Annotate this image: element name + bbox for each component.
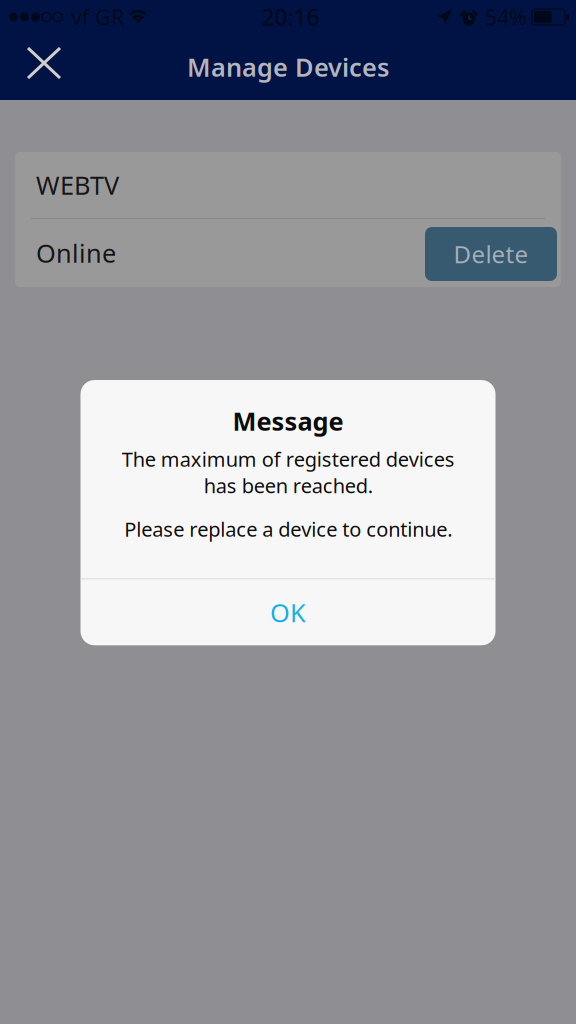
staticText: Delete: [453, 238, 528, 270]
staticText: The maximum of registered devices has be…: [121, 446, 454, 499]
staticText: 54%: [485, 3, 527, 31]
button[interactable]: OK: [80, 579, 495, 645]
staticText: WEBTV: [36, 168, 119, 202]
staticText: OK: [270, 595, 306, 629]
staticText: Message: [232, 404, 343, 438]
staticText: vf GR: [71, 3, 124, 31]
staticText: Please replace a device to continue.: [124, 516, 452, 542]
staticText: 20:16: [261, 2, 319, 32]
button[interactable]: Close: [0, 35, 76, 99]
button[interactable]: Delete: [425, 226, 557, 280]
staticText: Online: [36, 236, 116, 270]
staticText: Manage Devices: [187, 50, 389, 84]
